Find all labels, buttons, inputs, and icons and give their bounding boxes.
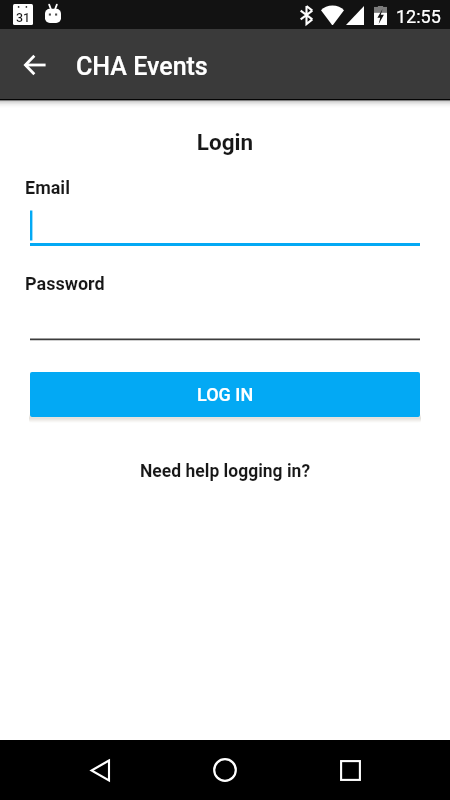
button[interactable]: Home [203,748,247,792]
button[interactable]: Back [78,748,122,792]
staticText: 31 [13,10,33,25]
staticText: CHA Events [76,52,208,81]
button[interactable]: Recents [328,748,372,792]
staticText: 12:55 [396,6,441,27]
staticText: LOG IN [197,384,254,405]
staticText: Login [0,129,450,155]
button[interactable]: Need help logging in? [134,458,317,485]
button[interactable]: Email input field [30,206,420,248]
staticText: Email [25,177,70,198]
button[interactable]: Password input field [30,300,420,342]
staticText: Password [25,273,105,294]
button[interactable]: LOG IN [30,372,420,417]
button[interactable]: Back [12,41,58,87]
